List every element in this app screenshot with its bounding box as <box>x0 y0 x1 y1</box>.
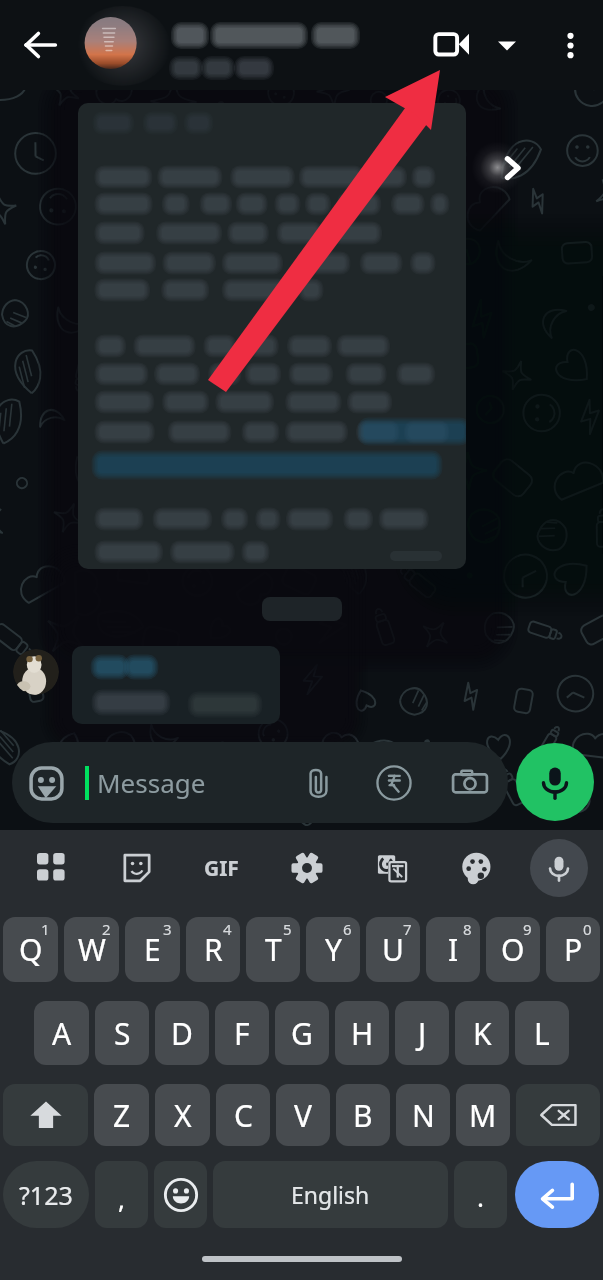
button[interactable]: M <box>456 1084 510 1146</box>
staticText: S <box>114 1013 131 1054</box>
staticText: 4 <box>223 919 232 939</box>
button[interactable]: Back <box>0 0 80 90</box>
button[interactable]: D <box>155 1001 209 1065</box>
staticText: V <box>294 1095 312 1136</box>
button[interactable]: Emoji <box>12 742 508 823</box>
button[interactable]: Payment <box>368 757 420 809</box>
staticText: . <box>477 1179 484 1214</box>
staticText: M <box>469 1095 497 1136</box>
button[interactable]: W <box>64 917 119 982</box>
staticText: T <box>265 929 282 970</box>
button[interactable]: R <box>186 917 240 982</box>
button[interactable]: J <box>395 1001 449 1065</box>
staticText: R <box>204 929 223 970</box>
button[interactable]: Voice message <box>516 743 594 821</box>
button[interactable]: GIF <box>179 830 264 906</box>
button[interactable]: U <box>366 917 420 982</box>
button[interactable]: Q <box>3 917 58 982</box>
button[interactable]: Forward <box>474 134 536 196</box>
button[interactable]: Translate <box>349 830 434 906</box>
button[interactable]: Theme <box>434 830 519 906</box>
button[interactable]: Video call <box>419 12 485 78</box>
staticText: H <box>351 1013 374 1054</box>
button[interactable]: X <box>155 1084 210 1146</box>
button[interactable]: , <box>95 1161 148 1228</box>
button[interactable]: B <box>336 1084 390 1146</box>
button[interactable]: P <box>546 917 600 982</box>
button[interactable]: Stickers <box>94 830 179 906</box>
staticText: B <box>353 1095 373 1136</box>
staticText: 8 <box>463 919 472 939</box>
button[interactable]: Y <box>306 917 360 982</box>
button[interactable]: G <box>275 1001 329 1065</box>
button[interactable]: Backspace <box>516 1084 600 1146</box>
staticText: 5 <box>283 919 292 939</box>
button[interactable]: S <box>95 1001 149 1065</box>
staticText: I <box>448 929 459 970</box>
staticText: 3 <box>163 919 172 939</box>
staticText: J <box>418 1013 427 1054</box>
staticText: 9 <box>523 919 532 939</box>
button[interactable]: Call options <box>485 23 529 67</box>
button[interactable]: Shift <box>3 1084 88 1146</box>
staticText: Message <box>97 765 206 800</box>
staticText: 7 <box>403 919 412 939</box>
button[interactable]: Settings <box>264 830 349 906</box>
button[interactable]: L <box>515 1001 569 1065</box>
button[interactable]: Z <box>94 1084 149 1146</box>
button[interactable]: Emoji <box>21 758 71 808</box>
staticText: X <box>174 1095 192 1136</box>
staticText: L <box>534 1013 550 1054</box>
button[interactable]: V <box>276 1084 330 1146</box>
staticText: GIF <box>204 854 239 883</box>
button[interactable]: K <box>455 1001 509 1065</box>
button[interactable]: H <box>335 1001 389 1065</box>
button[interactable]: Profile photo <box>72 6 156 90</box>
button[interactable]: O <box>486 917 540 982</box>
staticText: P <box>564 929 583 970</box>
staticText: A <box>52 1013 72 1054</box>
staticText: 0 <box>583 919 592 939</box>
staticText: E <box>144 929 161 970</box>
button[interactable]: N <box>396 1084 450 1146</box>
staticText: F <box>234 1013 250 1054</box>
button[interactable]: Apps <box>10 830 94 906</box>
button[interactable]: I <box>426 917 480 982</box>
button[interactable]: Enter <box>515 1161 599 1228</box>
button[interactable]: English <box>213 1161 448 1228</box>
staticText: 6 <box>343 919 352 939</box>
staticText: 1 <box>41 919 50 939</box>
button[interactable]: A <box>34 1001 89 1065</box>
button[interactable]: ?123 <box>3 1161 89 1228</box>
staticText: English <box>291 1179 370 1210</box>
button[interactable]: C <box>216 1084 270 1146</box>
staticText: W <box>78 929 106 970</box>
staticText: Q <box>19 929 43 970</box>
staticText: N <box>412 1095 435 1136</box>
staticText: , <box>118 1181 125 1216</box>
button[interactable] <box>78 103 466 569</box>
staticText: Y <box>325 929 342 970</box>
button[interactable]: Attach <box>292 757 344 809</box>
button[interactable]: Camera <box>444 757 496 809</box>
button[interactable]: . <box>454 1161 507 1228</box>
button[interactable]: More options <box>543 18 597 72</box>
button[interactable]: E <box>125 917 180 982</box>
button[interactable]: T <box>246 917 300 982</box>
staticText: K <box>473 1013 492 1054</box>
staticText: U <box>382 929 404 970</box>
staticText: Z <box>113 1095 131 1136</box>
staticText: C <box>234 1095 253 1136</box>
staticText: ?123 <box>19 1178 73 1212</box>
button[interactable] <box>72 646 280 724</box>
staticText: 2 <box>102 919 111 939</box>
staticText: D <box>171 1013 193 1054</box>
button[interactable]: F <box>215 1001 269 1065</box>
button[interactable]: Voice input <box>530 839 588 897</box>
button[interactable]: Emoji <box>154 1161 207 1228</box>
staticText: O <box>501 929 525 970</box>
staticText: G <box>291 1013 313 1054</box>
